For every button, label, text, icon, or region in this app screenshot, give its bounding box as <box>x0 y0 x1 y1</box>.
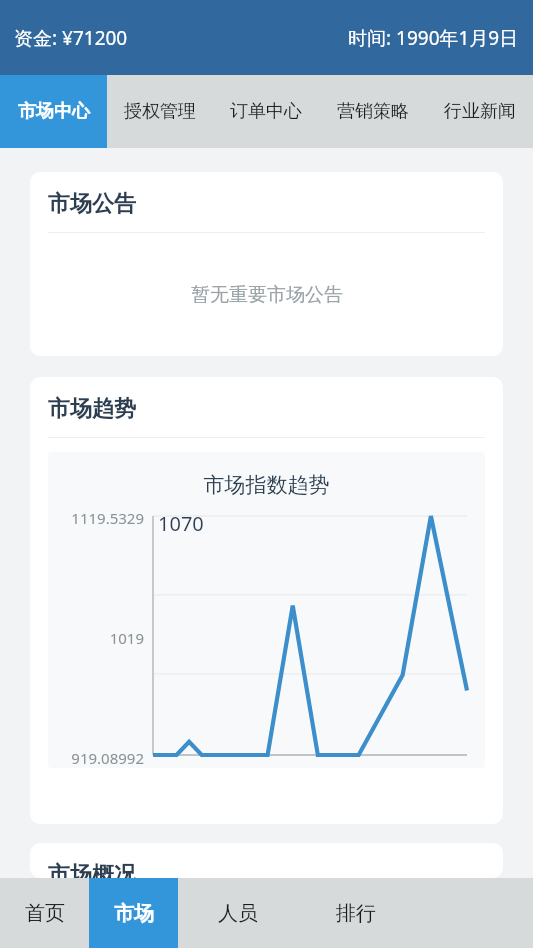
staticText: 市场指数趋势 <box>48 472 485 498</box>
button[interactable]: 市场公告 <box>30 172 503 356</box>
staticText: 市场趋势 <box>48 395 136 423</box>
staticText: 暂无重要市场公告 <box>191 283 343 307</box>
staticText: 授权管理 <box>124 100 196 123</box>
staticText: 919.08992 <box>48 748 144 768</box>
button[interactable]: 营销策略 <box>319 75 426 148</box>
button[interactable]: 市场 <box>89 878 178 948</box>
staticText: 订单中心 <box>230 100 302 123</box>
staticText: 人员 <box>218 901 258 926</box>
button[interactable]: 订单中心 <box>213 75 319 148</box>
staticText: 营销策略 <box>337 100 409 123</box>
button[interactable]: 授权管理 <box>107 75 213 148</box>
staticText: 行业新闻 <box>444 100 516 123</box>
staticText: 市场 <box>114 901 154 926</box>
staticText: 市场中心 <box>18 100 90 123</box>
button[interactable]: 人员 <box>178 878 297 948</box>
button[interactable]: 行业新闻 <box>426 75 533 148</box>
staticText: 资金: ¥71200 <box>14 25 128 51</box>
button[interactable]: 排行 <box>297 878 415 948</box>
staticText: 市场公告 <box>48 190 136 218</box>
staticText: 排行 <box>336 901 376 926</box>
staticText: 市场概况 <box>48 861 136 878</box>
staticText: 1119.5329 <box>48 508 144 528</box>
button[interactable]: 市场概况 <box>30 843 503 878</box>
staticText: 1070 <box>158 510 204 537</box>
staticText: 时间: 1990年1月9日 <box>348 25 519 51</box>
button[interactable]: 市场中心 <box>0 75 107 148</box>
button[interactable]: 市场趋势 <box>30 377 503 824</box>
staticText: 1019 <box>48 628 144 648</box>
button[interactable]: 首页 <box>0 878 89 948</box>
staticText: 首页 <box>25 901 65 926</box>
